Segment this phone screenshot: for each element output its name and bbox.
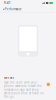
staticText: Scan the code with your phone camera to … <box>4 81 44 98</box>
button[interactable]: Status <box>47 83 50 86</box>
button[interactable]: Performance <box>0 6 24 12</box>
staticText: 9:41 <box>4 1 11 5</box>
staticText: Performance <box>5 7 22 11</box>
staticText: Get set <box>4 76 14 79</box>
